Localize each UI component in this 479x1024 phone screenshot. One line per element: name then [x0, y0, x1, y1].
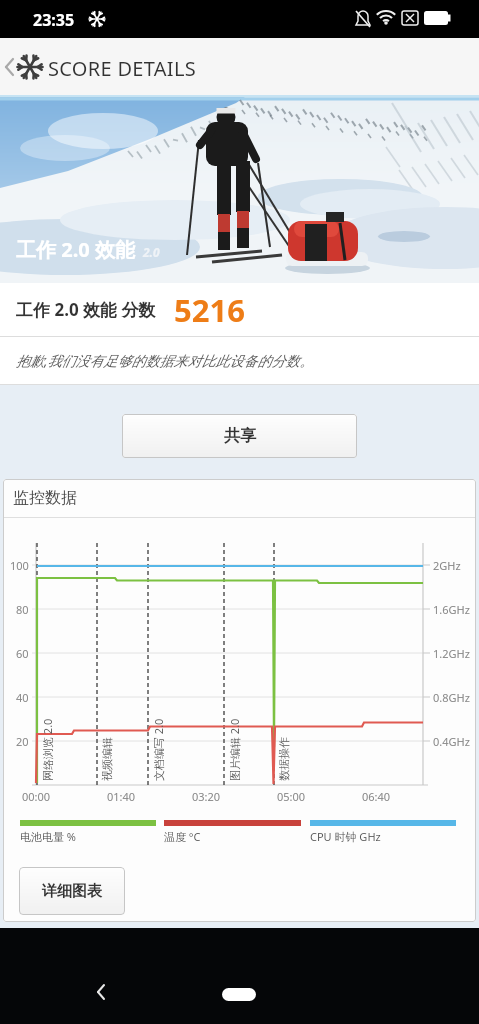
staticText: 23:35: [33, 9, 75, 31]
staticText: 0.8GHz: [433, 690, 470, 705]
staticText: 00:00: [22, 789, 51, 804]
staticText: 60: [16, 646, 29, 661]
staticText: CPU 时钟 GHz: [310, 829, 381, 844]
staticText: 05:00: [277, 789, 306, 804]
staticText: 40: [16, 690, 29, 705]
staticText: 06:40: [362, 789, 391, 804]
staticText: 共享: [224, 426, 256, 446]
staticText: 网络浏览 2.0: [40, 718, 55, 781]
staticText: 0.4GHz: [433, 734, 470, 749]
staticText: 2.0: [143, 244, 160, 260]
staticText: 文档编写 2.0: [151, 718, 166, 781]
staticText: 抱歉,我们没有足够的数据来对比此设备的分数。: [16, 351, 314, 370]
button[interactable]: 共享: [122, 414, 357, 458]
staticText: 20: [16, 734, 29, 749]
staticText: 温度 °C: [164, 829, 201, 844]
button[interactable]: [0, 38, 50, 95]
staticText: 1.6GHz: [433, 602, 470, 617]
staticText: 1.2GHz: [433, 646, 470, 661]
staticText: 80: [16, 602, 29, 617]
staticText: 2GHz: [433, 558, 461, 573]
staticText: 01:40: [107, 789, 136, 804]
staticText: 图片编辑 2.0: [227, 718, 242, 781]
button[interactable]: [222, 988, 256, 1001]
staticText: 100: [10, 558, 29, 573]
staticText: 监控数据: [13, 488, 77, 508]
staticText: 数据操作: [277, 737, 291, 781]
staticText: 详细图表: [42, 882, 102, 901]
staticText: 工作 2.0 效能 分数: [16, 298, 156, 321]
staticText: 03:20: [192, 789, 221, 804]
staticText: 5216: [174, 289, 245, 331]
staticText: SCORE DETAILS: [48, 55, 196, 82]
staticText: 视频编辑: [100, 737, 114, 781]
button[interactable]: [80, 970, 124, 1014]
staticText: 电池电量 %: [20, 829, 77, 844]
staticText: 工作 2.0 效能: [16, 236, 135, 263]
button[interactable]: 详细图表: [19, 867, 125, 915]
